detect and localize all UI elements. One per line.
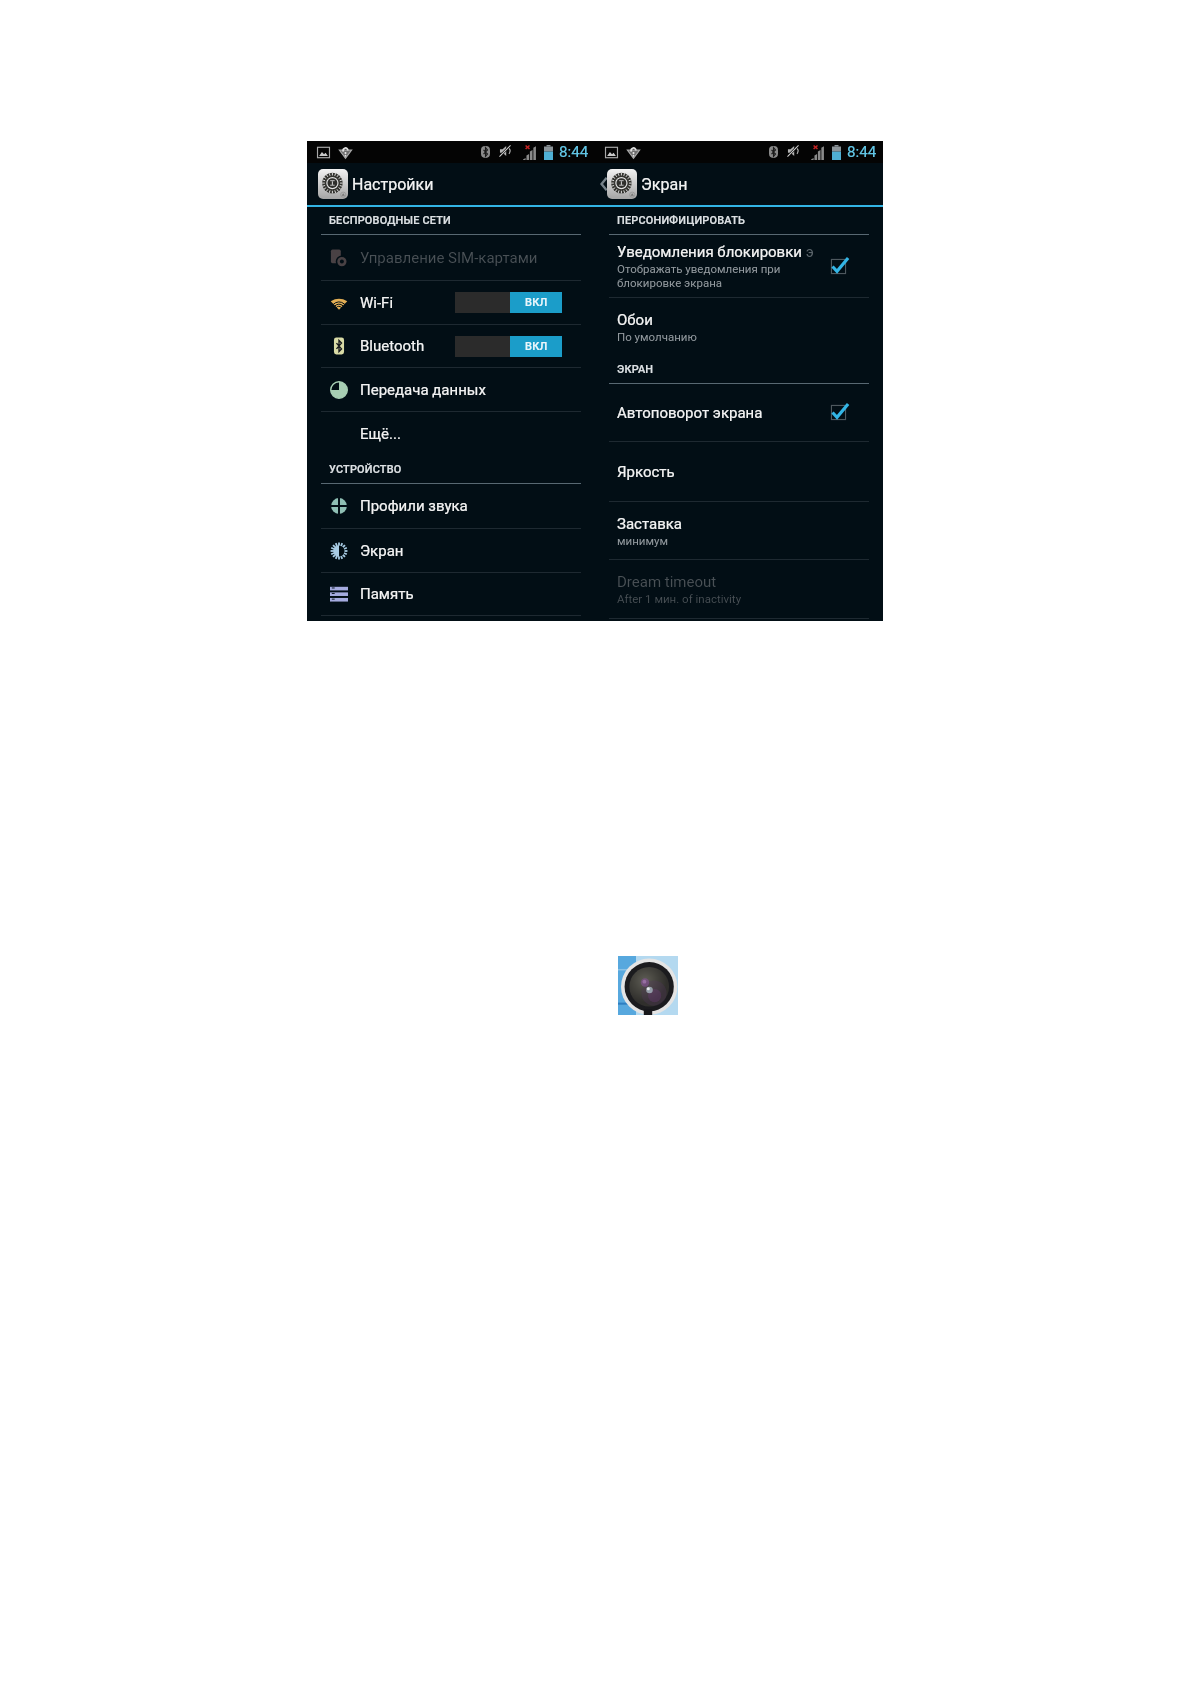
staticText: Экран — [360, 542, 595, 560]
staticText: Профили звука — [360, 497, 595, 515]
button[interactable]: Настройки — [307, 163, 595, 205]
staticText: Настройки — [352, 175, 434, 194]
staticText: Яркость — [617, 463, 675, 481]
staticText: Bluetooth — [360, 337, 455, 355]
other: Camera lens photo — [618, 956, 678, 1015]
staticText: минимум — [617, 534, 668, 547]
staticText: Wi-Fi — [360, 294, 455, 312]
button[interactable]: Экран — [307, 529, 595, 572]
button[interactable]: Профили звука — [307, 484, 595, 528]
button[interactable]: Заставка — [595, 502, 883, 559]
button[interactable]: Яркость — [595, 442, 883, 501]
staticText: БЕСПРОВОДНЫЕ СЕТИ — [329, 214, 451, 227]
button[interactable]: Автоповорот экрана — [595, 384, 883, 441]
staticText: ПЕРСОНИФИЦИРОВАТЬ — [617, 214, 746, 227]
other: Back — [600, 177, 607, 191]
button[interactable]: Уведомления блокировки э — [595, 235, 883, 297]
button[interactable]: Bluetooth — [307, 325, 595, 367]
button[interactable]: Checked checkbox — [831, 259, 846, 274]
staticText: УСТРОЙСТВО — [329, 463, 402, 476]
staticText: 8:44 — [847, 143, 877, 161]
staticText: ВКЛ — [525, 340, 548, 353]
button[interactable]: ВКЛ — [455, 292, 562, 313]
staticText: Заставка — [617, 515, 683, 533]
staticText: Экран — [641, 175, 688, 194]
staticText: Управление SIM-картами — [360, 249, 595, 267]
button[interactable]: Back — [595, 163, 883, 205]
staticText: По умолчанию — [617, 330, 697, 343]
staticText: Отображать уведомления при блокировке эк… — [617, 262, 781, 290]
staticText: Ещё... — [360, 425, 595, 443]
button[interactable]: Checked checkbox — [831, 405, 846, 420]
button[interactable]: Память — [307, 573, 595, 615]
staticText: ЭКРАН — [617, 363, 654, 376]
staticText: After 1 мин. of inactivity — [617, 592, 742, 605]
button[interactable]: Wi-Fi — [307, 281, 595, 324]
button[interactable]: Dream timeout — [595, 560, 883, 618]
button[interactable]: ВКЛ — [455, 336, 562, 357]
button[interactable]: Ещё... — [307, 412, 595, 456]
staticText: Передача данных — [360, 381, 595, 399]
staticText: Память — [360, 585, 595, 603]
staticText: Автоповорот экрана — [617, 404, 763, 422]
button[interactable]: Передача данных — [307, 368, 595, 411]
staticText: Dream timeout — [617, 573, 717, 591]
staticText: Обои — [617, 311, 653, 329]
staticText: ВКЛ — [525, 296, 548, 309]
staticText: 8:44 — [559, 143, 589, 161]
staticText: Уведомления блокировки э — [617, 243, 814, 261]
button[interactable]: Управление SIM-картами — [307, 235, 595, 280]
button[interactable]: Обои — [595, 298, 883, 356]
